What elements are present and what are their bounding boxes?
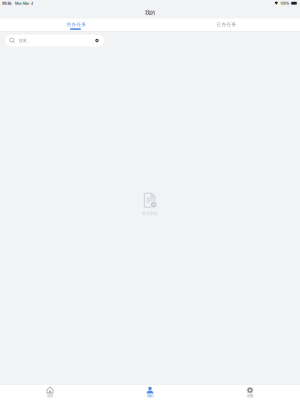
staticText: 暂无数据 xyxy=(142,211,158,216)
staticText: 搜索 xyxy=(19,38,27,43)
staticText: 设置 xyxy=(247,394,253,398)
staticText: 09:36 xyxy=(2,1,11,6)
button[interactable]: 首页 xyxy=(0,384,100,400)
button[interactable]: 搜索 xyxy=(5,35,104,46)
staticText: Mon Mar 4 xyxy=(15,1,33,6)
button[interactable]: 已办任务 xyxy=(150,18,300,31)
button[interactable]: 待办任务 xyxy=(0,18,150,31)
staticText: 首页 xyxy=(47,394,53,398)
staticText: 我的 xyxy=(145,9,155,16)
button[interactable]: 我的 xyxy=(100,384,200,400)
staticText: 待办任务 xyxy=(66,21,86,27)
staticText: 100% xyxy=(280,1,289,6)
staticText: 已办任务 xyxy=(216,21,236,27)
button[interactable]: 设置 xyxy=(200,384,300,400)
staticText: 我的 xyxy=(147,394,153,398)
